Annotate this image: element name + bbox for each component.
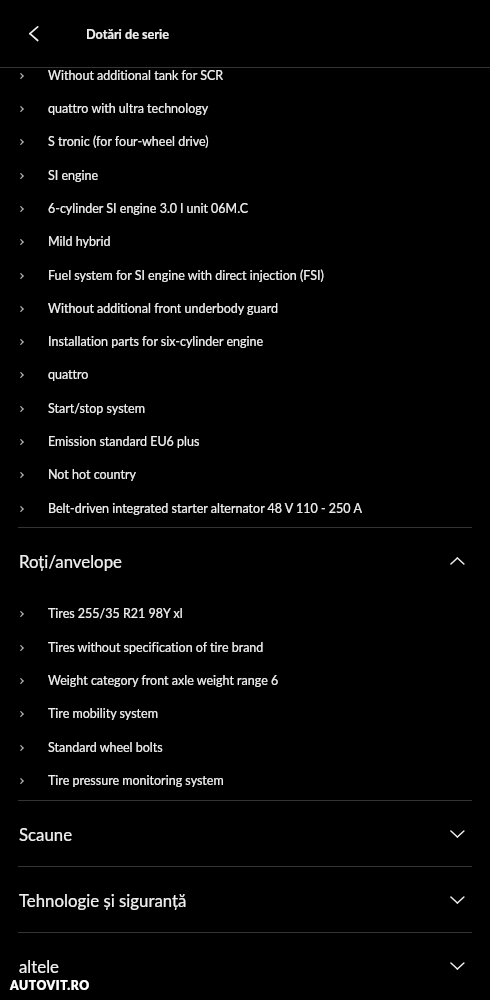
- button[interactable]: Not hot country: [0, 458, 490, 491]
- staticText: Weight category front axle weight range …: [48, 673, 279, 688]
- staticText: Start/stop system: [48, 401, 145, 416]
- staticText: 6-cylinder SI engine 3.0 l unit 06M.C: [48, 201, 249, 216]
- staticText: altele: [19, 956, 448, 976]
- other: Expand section: [448, 822, 472, 846]
- button[interactable]: Without additional tank for SCR: [0, 59, 490, 92]
- staticText: Tires 255/35 R21 98Y xl: [48, 606, 183, 621]
- button[interactable]: Installation parts for six-cylinder engi…: [0, 325, 490, 358]
- button[interactable]: Without additional front underbody guard: [0, 292, 490, 325]
- staticText: Belt-driven integrated starter alternato…: [48, 501, 362, 516]
- other: Expand section: [448, 888, 472, 912]
- button[interactable]: Emission standard EU6 plus: [0, 425, 490, 458]
- other: Expand section: [448, 954, 472, 978]
- button[interactable]: quattro with ultra technology: [0, 92, 490, 125]
- button[interactable]: Roți/anvelope: [0, 528, 490, 594]
- button[interactable]: Weight category front axle weight range …: [0, 664, 490, 697]
- button[interactable]: S tronic (for four-wheel drive): [0, 125, 490, 158]
- staticText: Fuel system for SI engine with direct in…: [48, 268, 324, 283]
- button[interactable]: 6-cylinder SI engine 3.0 l unit 06M.C: [0, 192, 490, 225]
- staticText: Emission standard EU6 plus: [48, 434, 200, 449]
- button[interactable]: altele: [0, 933, 490, 999]
- button[interactable]: Belt-driven integrated starter alternato…: [0, 492, 490, 525]
- staticText: Tire mobility system: [48, 706, 158, 721]
- staticText: Tehnologie și siguranță: [19, 890, 448, 910]
- staticText: Mild hybrid: [48, 234, 111, 249]
- other: Collapse section: [448, 549, 472, 573]
- button[interactable]: SI engine: [0, 159, 490, 192]
- staticText: Without additional tank for SCR: [48, 68, 224, 83]
- button[interactable]: Tehnologie și siguranță: [0, 867, 490, 933]
- staticText: S tronic (for four-wheel drive): [48, 134, 209, 149]
- staticText: quattro: [48, 367, 89, 382]
- staticText: Scaune: [19, 824, 448, 844]
- button[interactable]: Tires without specification of tire bran…: [0, 631, 490, 664]
- button[interactable]: Back: [0, 0, 67, 66]
- button[interactable]: Standard wheel bolts: [0, 731, 490, 764]
- button[interactable]: Tires 255/35 R21 98Y xl: [0, 597, 490, 630]
- button[interactable]: quattro: [0, 358, 490, 391]
- button[interactable]: Fuel system for SI engine with direct in…: [0, 259, 490, 292]
- staticText: quattro with ultra technology: [48, 101, 209, 116]
- staticText: Roți/anvelope: [19, 551, 448, 571]
- staticText: SI engine: [48, 168, 99, 183]
- staticText: Not hot country: [48, 467, 136, 482]
- staticText: Dotări de serie: [86, 26, 170, 41]
- button[interactable]: Start/stop system: [0, 392, 490, 425]
- staticText: Without additional front underbody guard: [48, 301, 279, 316]
- button[interactable]: Mild hybrid: [0, 225, 490, 258]
- staticText: Tire pressure monitoring system: [48, 773, 224, 788]
- button[interactable]: Scaune: [0, 801, 490, 867]
- button[interactable]: Tire mobility system: [0, 697, 490, 730]
- button[interactable]: Tire pressure monitoring system: [0, 764, 490, 797]
- staticText: AUTOVIT.RO: [10, 978, 90, 993]
- staticText: Standard wheel bolts: [48, 740, 163, 755]
- staticText: Tires without specification of tire bran…: [48, 640, 264, 655]
- staticText: Installation parts for six-cylinder engi…: [48, 334, 264, 349]
